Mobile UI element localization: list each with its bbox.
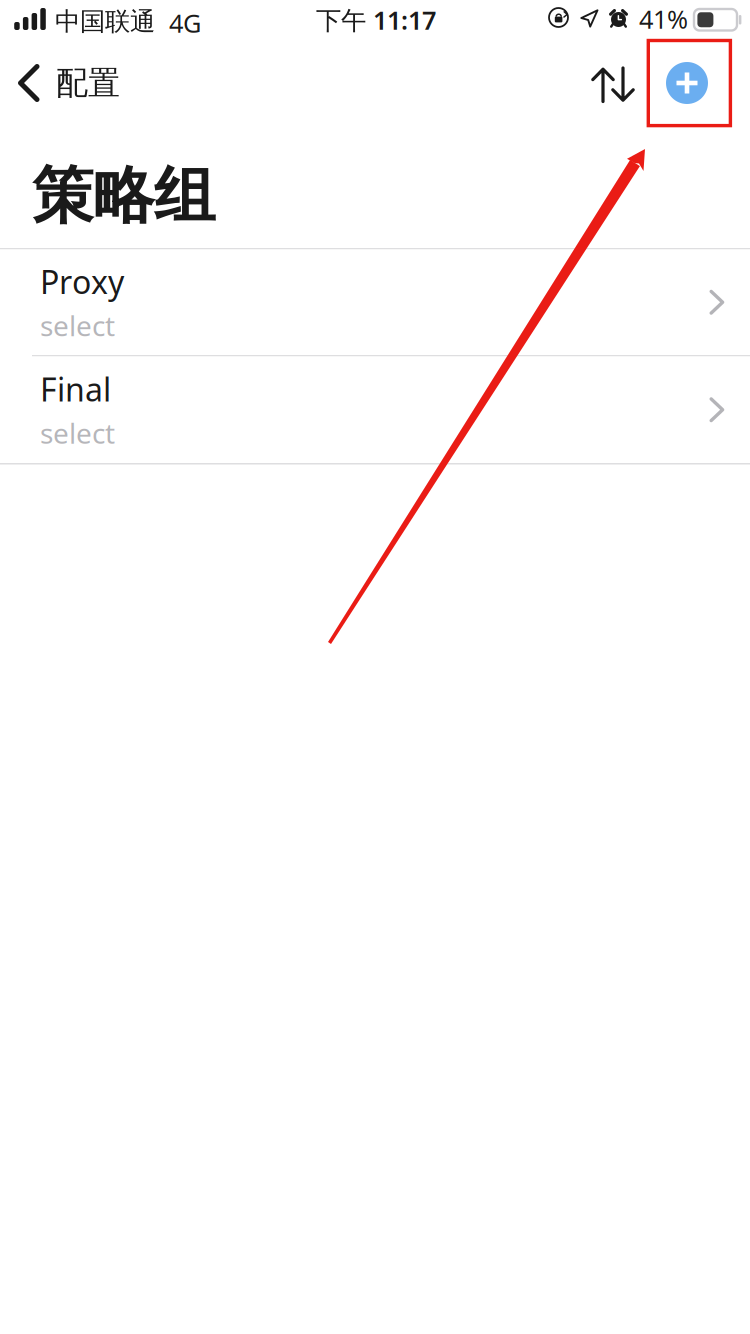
button[interactable]: Final <box>0 356 750 463</box>
staticText: Final <box>40 368 111 410</box>
staticText: 下午 11:17 <box>316 3 436 37</box>
button[interactable]: Add <box>644 53 750 113</box>
button[interactable]: Proxy <box>0 249 750 355</box>
staticText: select <box>40 307 115 344</box>
staticText: 策略组 <box>32 158 215 234</box>
button[interactable]: Sort <box>576 53 644 113</box>
staticText: 4G <box>169 6 201 40</box>
staticText: select <box>40 414 115 452</box>
staticText: 配置 <box>56 63 120 103</box>
staticText: 中国联通 <box>55 6 155 37</box>
staticText: Proxy <box>40 260 124 303</box>
button[interactable]: 配置 <box>0 53 132 113</box>
staticText: 41% <box>639 2 688 36</box>
